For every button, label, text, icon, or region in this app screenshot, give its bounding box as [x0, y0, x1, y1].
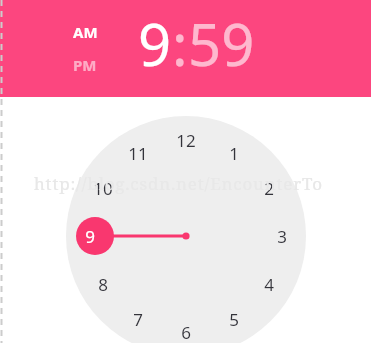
- button[interactable]: 7: [121, 306, 155, 332]
- staticText: 1: [229, 142, 239, 165]
- staticText: http://blog.csdn.net/EncounterTo: [34, 172, 323, 195]
- staticText: 4: [264, 273, 274, 296]
- button[interactable]: 4: [252, 271, 286, 297]
- button[interactable]: 6: [169, 319, 203, 343]
- button[interactable]: 5: [217, 306, 251, 332]
- staticText: 7: [133, 308, 143, 331]
- staticText: 2: [264, 177, 274, 200]
- staticText: 8: [98, 273, 108, 296]
- staticText: AM: [73, 22, 98, 42]
- button[interactable]: 59: [188, 4, 255, 83]
- staticText: 3: [277, 225, 287, 248]
- staticText: 11: [128, 142, 148, 165]
- staticText: 6: [181, 321, 191, 343]
- staticText: 9: [138, 4, 172, 83]
- button[interactable]: 9: [73, 223, 107, 249]
- staticText: 12: [176, 129, 196, 152]
- button[interactable]: 11: [121, 140, 155, 166]
- staticText: 59: [188, 4, 255, 83]
- button[interactable]: 10: [86, 175, 120, 201]
- staticText: PM: [73, 55, 97, 75]
- button[interactable]: AM: [71, 21, 100, 43]
- button[interactable]: 8: [86, 271, 120, 297]
- staticText: 5: [229, 308, 239, 331]
- staticText: 9: [85, 225, 95, 248]
- button[interactable]: 1: [217, 140, 251, 166]
- button[interactable]: 3: [265, 223, 299, 249]
- button[interactable]: 2: [252, 175, 286, 201]
- button[interactable]: 9: [138, 4, 172, 83]
- staticText: :: [172, 4, 188, 83]
- button[interactable]: PM: [71, 54, 99, 76]
- button[interactable]: 12: [169, 127, 203, 153]
- staticText: 10: [93, 177, 113, 200]
